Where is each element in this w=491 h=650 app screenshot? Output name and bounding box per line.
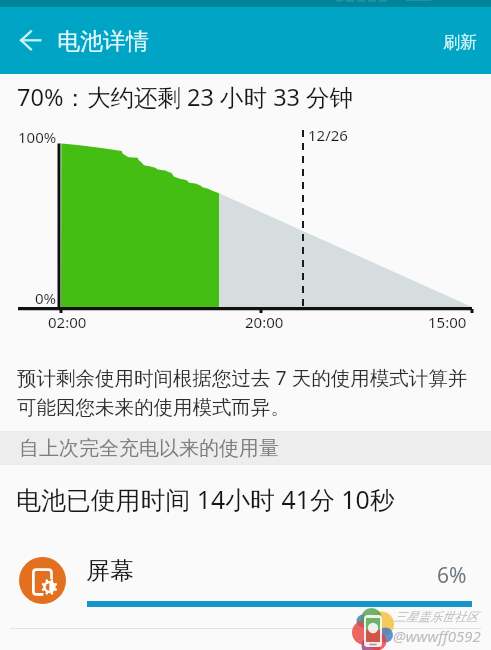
staticText: 0% [35,288,57,308]
staticText: 100% [18,127,57,147]
staticText: 20:00 [245,312,284,332]
button[interactable]: 屏幕 [0,540,491,630]
staticText: 15:00 [428,312,467,332]
staticText: 6% [437,561,467,590]
button[interactable]: Back [5,16,53,64]
staticText: 屏幕 [86,556,134,586]
staticText: 02:00 [48,312,87,332]
staticText: 电池详情 [57,27,149,56]
staticText: 电池已使用时间 14小时 41分 10秒 [16,482,395,516]
staticText: 刷新 [443,32,477,53]
button[interactable]: 刷新 [435,27,485,58]
staticText: @wwwff0592 [393,626,481,646]
staticText: 70%：大约还剩 23 小时 33 分钟 [17,81,354,113]
staticText: 自上次完全充电以来的使用量 [19,436,279,461]
staticText: 三星盖乐世社区 [394,609,478,624]
staticText: 12/26 [308,125,348,145]
staticText: 预计剩余使用时间根据您过去 7 天的使用模式计算并 可能因您未来的使用模式而异。 [17,364,468,419]
